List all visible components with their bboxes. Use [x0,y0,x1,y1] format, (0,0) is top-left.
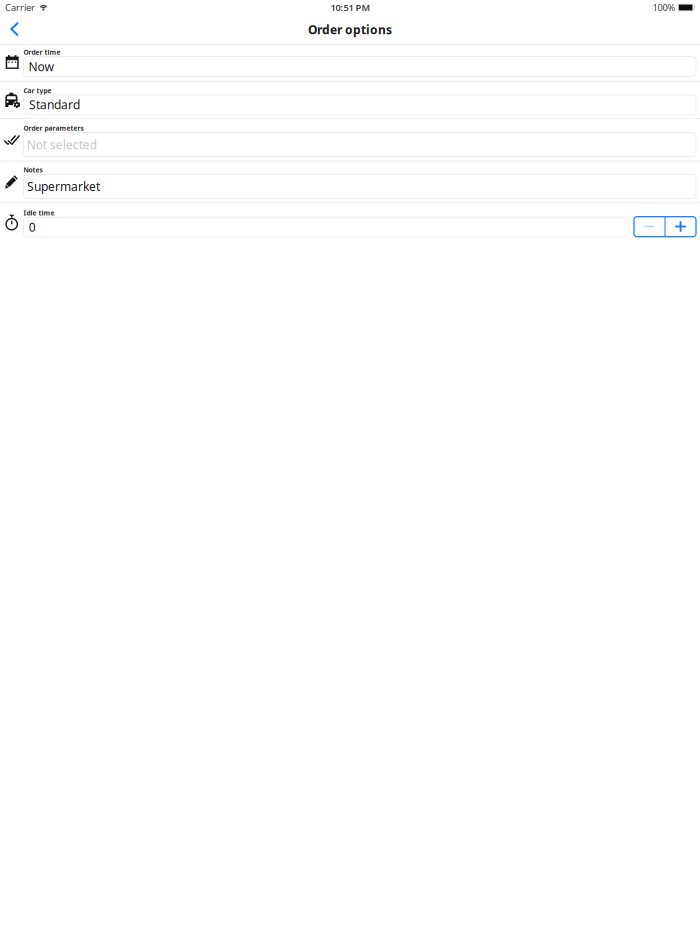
staticText: Carrier [5,1,35,14]
button[interactable]: Decrease idle time [634,217,664,237]
staticText: Order options [308,21,392,37]
staticText: Standard [29,97,80,113]
staticText: Idle time [23,208,54,217]
button[interactable]: Back [0,15,31,44]
staticText: 10:51 PM [330,1,370,14]
button[interactable]: Order parameters [0,119,700,161]
staticText: 100% [652,1,675,14]
staticText: Supermarket [27,178,100,194]
button[interactable]: Idle time [0,203,700,241]
staticText: Now [28,58,53,74]
button[interactable]: Order time [0,45,700,81]
staticText: 0 [29,219,36,235]
button[interactable]: Notes [0,161,700,202]
staticText: Not selected [27,137,97,152]
staticText: Order time [23,48,60,56]
button[interactable]: Car type [0,82,700,118]
staticText: Order parameters [23,124,83,133]
button[interactable]: Increase idle time [665,217,696,237]
staticText: Car type [23,86,51,95]
staticText: Notes [23,165,42,174]
